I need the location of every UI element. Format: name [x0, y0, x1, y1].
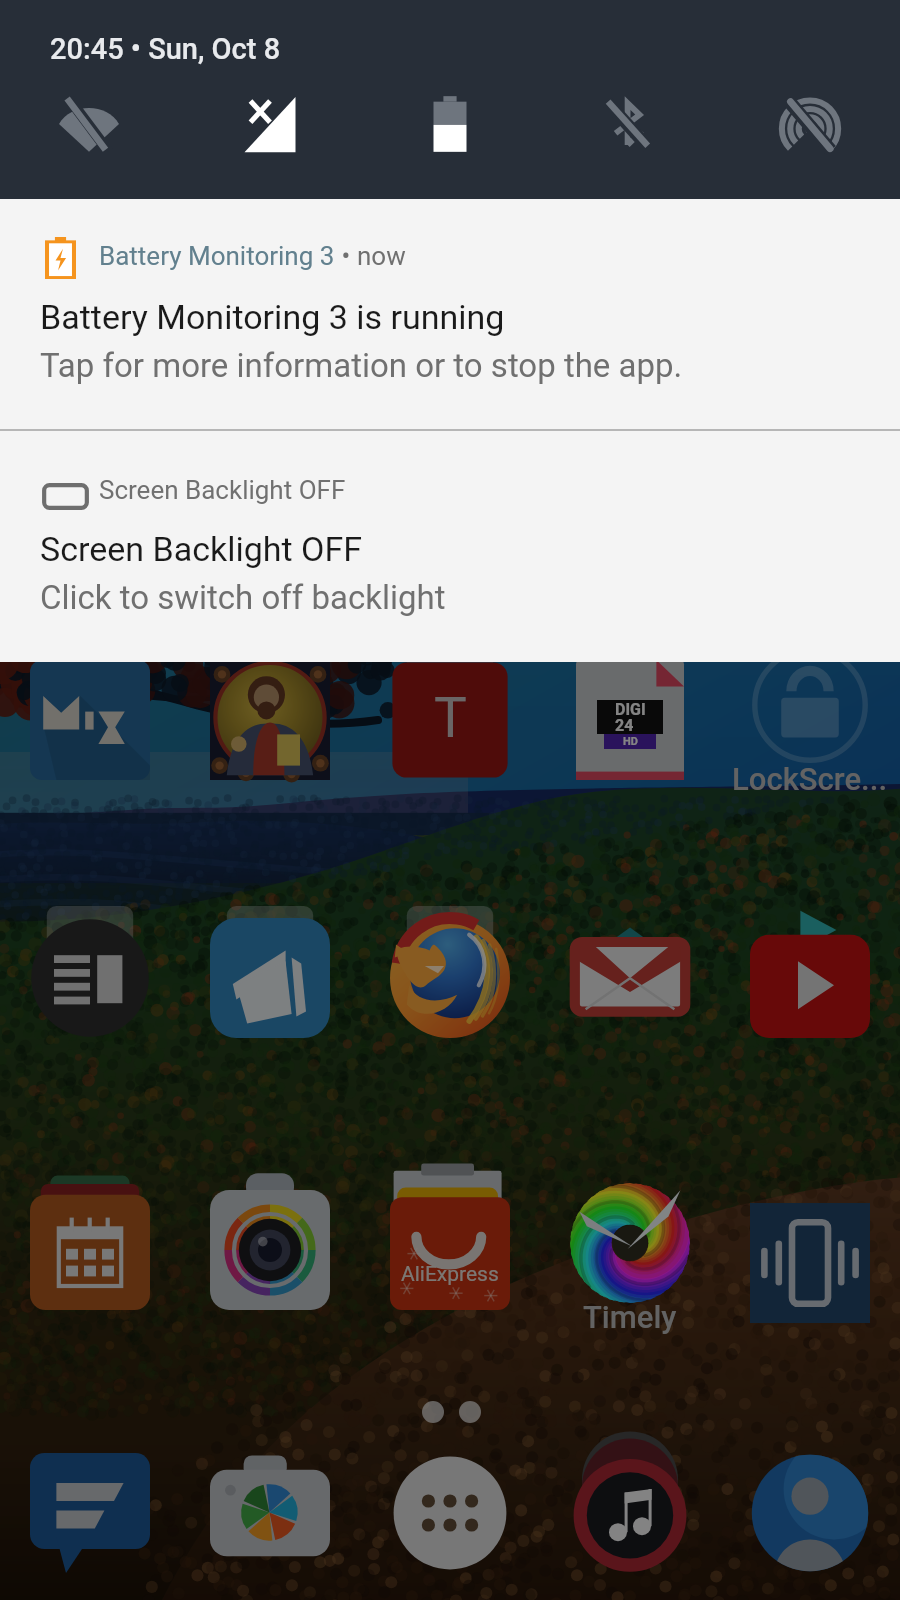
- button[interactable]: Messaging: [12, 1435, 168, 1591]
- button[interactable]: Contacts: [732, 1435, 888, 1591]
- button[interactable]: Digi24: [552, 642, 708, 798]
- button[interactable]: Music: [552, 1435, 708, 1591]
- button[interactable]: Calendar: [12, 1172, 168, 1328]
- staticText: HD: [623, 735, 638, 748]
- staticText: AliExpress: [401, 1262, 499, 1287]
- button[interactable]: Firefox: [372, 900, 528, 1056]
- button[interactable]: Books: [192, 900, 348, 1056]
- staticText: Timely: [583, 1299, 677, 1335]
- button[interactable]: Mix: [12, 642, 168, 798]
- staticText: Tap for more information or to stop the …: [40, 346, 683, 385]
- staticText: •: [335, 241, 357, 271]
- button[interactable]: Icon: [192, 642, 348, 798]
- staticText: LockScre...: [732, 761, 888, 797]
- staticText: DIGI 24: [615, 700, 646, 734]
- button[interactable]: LockScreen: [732, 627, 888, 783]
- staticText: 20:45 • Sun, Oct 8: [50, 32, 281, 66]
- staticText: Screen Backlight OFF: [40, 529, 363, 569]
- staticText: Battery Monitoring 3 is running: [40, 297, 505, 337]
- staticText: Screen Backlight OFF: [99, 475, 346, 505]
- button[interactable]: All apps: [372, 1435, 528, 1591]
- button[interactable]: News: [12, 900, 168, 1056]
- button[interactable]: Screen Backlight OFF: [0, 431, 900, 662]
- button[interactable]: TV: [372, 642, 528, 798]
- button[interactable]: AliExpress: [372, 1172, 528, 1328]
- button[interactable]: Battery Monitoring 3: [0, 199, 900, 430]
- button[interactable]: Gmail: [552, 900, 708, 1056]
- staticText: T: [434, 686, 467, 750]
- button[interactable]: Photos: [192, 1435, 348, 1591]
- button[interactable]: Camera360: [192, 1172, 348, 1328]
- button[interactable]: YouTube: [732, 900, 888, 1056]
- staticText: Click to switch off backlight: [40, 578, 446, 617]
- button[interactable]: Vibrate: [732, 1185, 888, 1341]
- staticText: now: [357, 241, 406, 271]
- staticText: Battery Monitoring 3: [99, 241, 335, 271]
- button[interactable]: Timely: [552, 1165, 708, 1321]
